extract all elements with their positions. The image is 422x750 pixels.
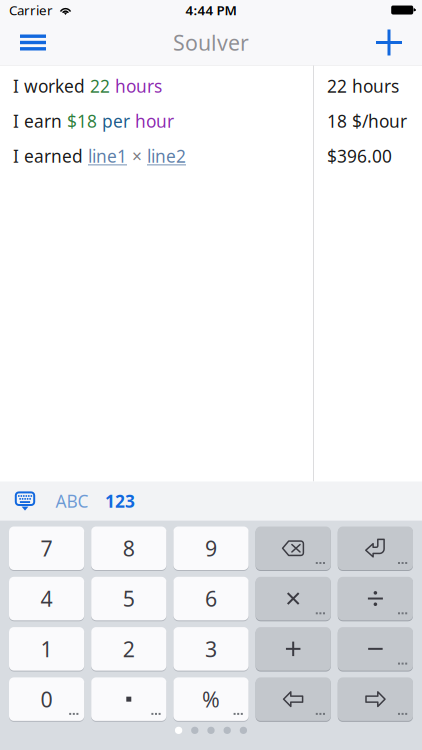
staticText: Carrier bbox=[9, 1, 53, 19]
staticText: 6 bbox=[205, 584, 217, 613]
staticText: hour bbox=[135, 109, 174, 132]
button[interactable]: Move left bbox=[256, 677, 331, 721]
button[interactable]: 3 bbox=[173, 627, 249, 671]
button[interactable]: Move right bbox=[338, 677, 413, 721]
button[interactable]: 123 bbox=[96, 481, 144, 520]
staticText: $396.00 bbox=[327, 144, 392, 167]
button[interactable]: Multiply bbox=[256, 577, 331, 620]
button[interactable]: Plus bbox=[256, 627, 331, 671]
staticText: Soulver bbox=[173, 28, 249, 57]
staticText: 7 bbox=[41, 534, 53, 562]
button[interactable]: Delete bbox=[256, 526, 331, 570]
button[interactable]: 0 bbox=[9, 677, 84, 721]
button[interactable]: New sheet bbox=[363, 20, 415, 65]
staticText: 4:44 PM bbox=[185, 1, 236, 19]
staticText: 22 hours bbox=[327, 74, 399, 97]
button[interactable]: 4 bbox=[9, 577, 84, 620]
button[interactable]: 1 bbox=[9, 627, 84, 671]
staticText: 8 bbox=[123, 534, 135, 562]
staticText: 18 $/hour bbox=[327, 109, 407, 132]
staticText: ABC bbox=[55, 489, 88, 512]
staticText: I earned bbox=[13, 144, 88, 167]
button[interactable]: 8 bbox=[91, 526, 166, 570]
button[interactable]: Hide keyboard bbox=[6, 481, 44, 520]
staticText: 3 bbox=[205, 635, 217, 663]
staticText: line1 bbox=[88, 144, 127, 167]
staticText: 1 bbox=[41, 635, 53, 663]
staticText: per bbox=[102, 109, 130, 132]
staticText: I worked bbox=[13, 74, 90, 97]
staticText: 4 bbox=[41, 584, 53, 613]
staticText: 5 bbox=[123, 584, 135, 613]
button[interactable]: Divide bbox=[338, 577, 413, 620]
staticText: line2 bbox=[147, 144, 186, 167]
staticText: 22 bbox=[90, 74, 110, 97]
staticText: 0 bbox=[41, 685, 53, 713]
button[interactable]: Minus bbox=[338, 627, 413, 671]
staticText: hours bbox=[115, 74, 162, 97]
button[interactable]: 2 bbox=[91, 627, 166, 671]
staticText: 2 bbox=[123, 635, 135, 663]
button[interactable]: 7 bbox=[9, 526, 84, 570]
staticText: % bbox=[202, 685, 220, 713]
button[interactable]: Menu bbox=[7, 20, 59, 65]
staticText bbox=[130, 109, 135, 132]
button[interactable]: 5 bbox=[91, 577, 166, 620]
button[interactable]: ABC bbox=[48, 481, 96, 520]
button[interactable]: 9 bbox=[173, 526, 249, 570]
staticText: 123 bbox=[105, 489, 135, 512]
staticText: 9 bbox=[205, 534, 217, 562]
button[interactable]: 6 bbox=[173, 577, 249, 620]
staticText: I earn bbox=[13, 109, 67, 132]
staticText: $18 bbox=[67, 109, 97, 132]
staticText: × bbox=[132, 144, 142, 167]
button[interactable]: Decimal point bbox=[91, 677, 166, 721]
button[interactable]: Return bbox=[338, 526, 413, 570]
button[interactable]: Percent bbox=[173, 677, 249, 721]
